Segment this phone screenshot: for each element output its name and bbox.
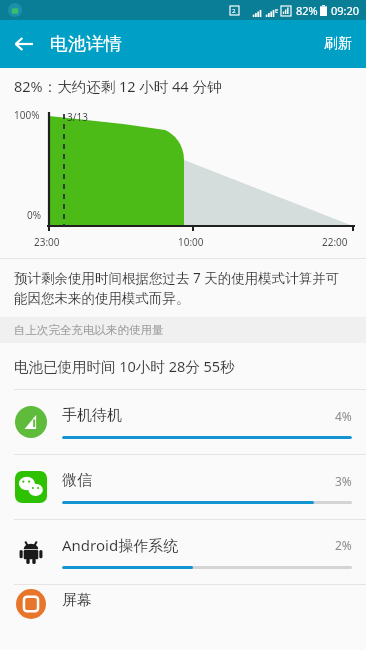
staticText: 3/13 <box>67 110 88 124</box>
button[interactable]: 电池已使用时间 10小时 28分 55秒 <box>0 343 366 389</box>
staticText: E <box>275 7 279 15</box>
staticText: 预计剩余使用时间根据您过去 7 天的使用模式计算并可能因您未来的使用模式而异。 <box>14 269 352 307</box>
button[interactable]: Back <box>0 20 48 68</box>
staticText: 82%：大约还剩 12 小时 44 分钟 <box>14 76 222 96</box>
staticText: 09:20 <box>331 3 360 18</box>
staticText: 4% <box>335 408 352 424</box>
staticText: 刷新 <box>324 35 352 53</box>
staticText: 微信 <box>62 471 335 490</box>
staticText: 电池已使用时间 10小时 28分 55秒 <box>14 356 235 376</box>
staticText: 手机待机 <box>62 406 335 425</box>
staticText: Android操作系统 <box>62 535 335 555</box>
button[interactable]: 微信 <box>0 455 366 520</box>
staticText: 22:00 <box>322 235 348 249</box>
staticText: 10:00 <box>178 235 204 249</box>
staticText: 2 <box>232 7 236 15</box>
staticText: 屏幕 <box>62 591 92 610</box>
button[interactable]: 手机待机 <box>0 390 366 455</box>
staticText: 82% <box>296 3 318 18</box>
staticText: 电池详情 <box>50 33 122 56</box>
staticText: 100% <box>14 108 40 122</box>
button[interactable]: 屏幕 <box>0 585 366 625</box>
staticText: 23:00 <box>34 235 60 249</box>
staticText: 3% <box>335 473 352 489</box>
button[interactable]: Android操作系统 <box>0 520 366 585</box>
staticText: 自上次完全充电以来的使用量 <box>14 323 164 337</box>
button[interactable]: 刷新 <box>310 23 366 65</box>
staticText: 0% <box>27 208 42 222</box>
staticText: 2% <box>335 537 352 553</box>
